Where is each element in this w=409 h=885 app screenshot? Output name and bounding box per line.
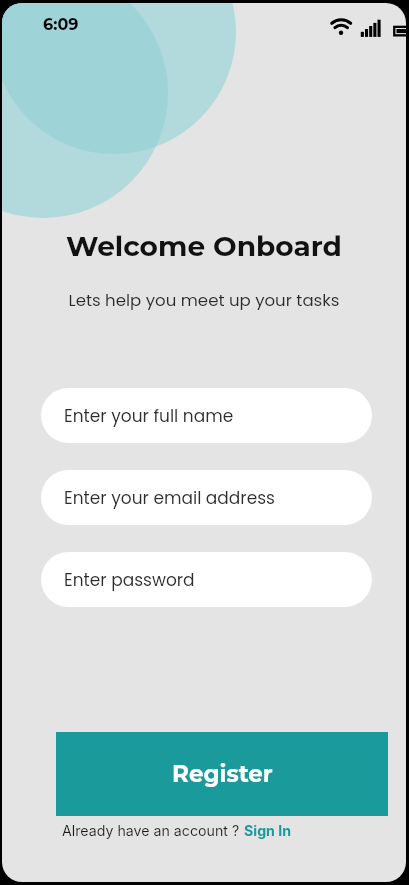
button[interactable]: Enter your full name xyxy=(41,388,372,443)
staticText: Already have an account ? xyxy=(62,822,244,839)
button[interactable]: Enter your email address xyxy=(41,470,372,525)
staticText: Register xyxy=(172,760,273,788)
staticText: Enter your email address xyxy=(64,486,275,510)
staticText: Enter password xyxy=(64,568,195,592)
staticText: Welcome Onboard xyxy=(2,229,406,263)
button[interactable]: Register xyxy=(56,732,388,816)
staticText: Enter your full name xyxy=(64,404,234,428)
button[interactable]: Enter password xyxy=(41,552,372,607)
staticText: Lets help you meet up your tasks xyxy=(2,289,406,312)
staticText: 6:09 xyxy=(43,15,79,35)
button[interactable]: Sign In xyxy=(244,822,292,839)
